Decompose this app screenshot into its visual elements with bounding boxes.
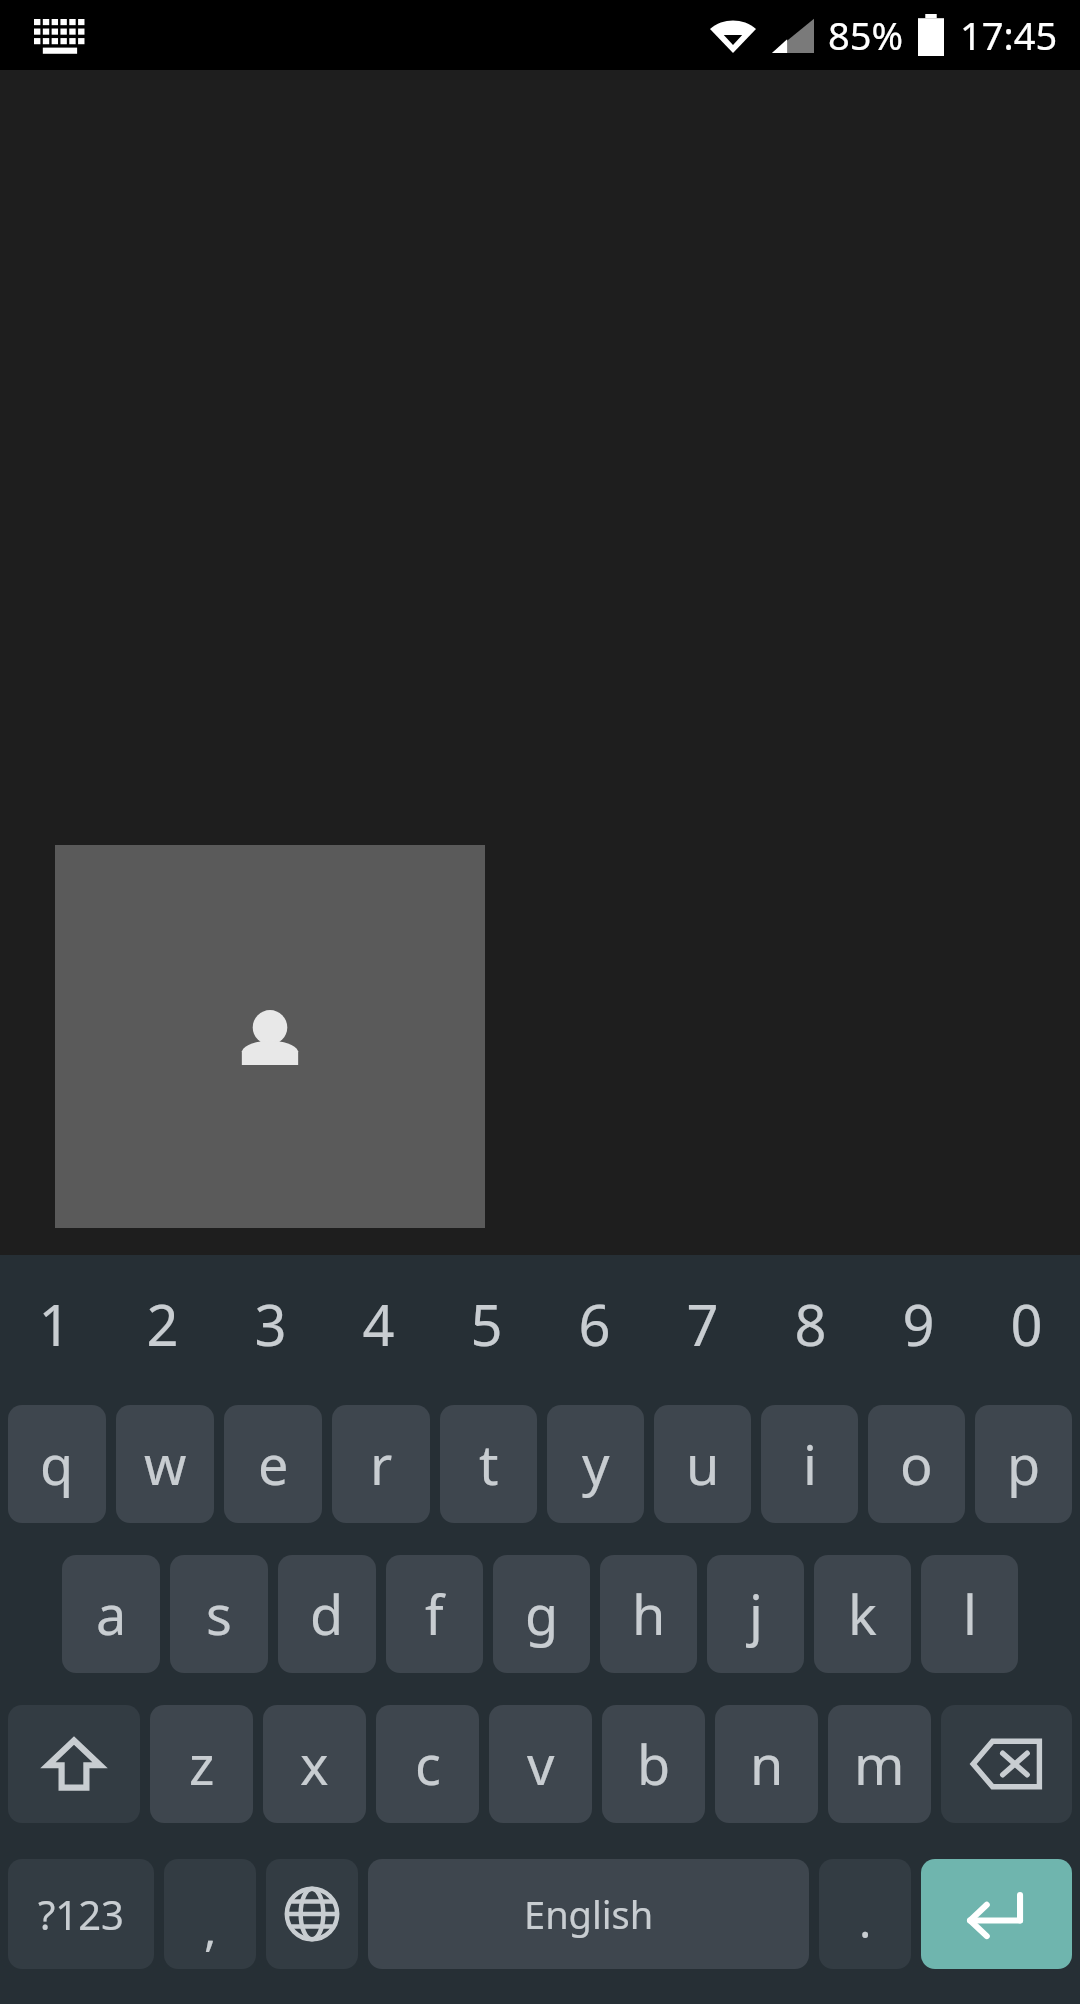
staticText: l — [963, 1577, 977, 1651]
button[interactable]: 7 — [648, 1255, 756, 1393]
staticText: g — [525, 1577, 559, 1651]
button[interactable]: Change language — [266, 1859, 358, 1969]
button[interactable]: . — [819, 1859, 911, 1969]
staticText: q — [40, 1427, 74, 1501]
button[interactable]: 8 — [756, 1255, 864, 1393]
staticText: x — [300, 1727, 329, 1801]
staticText: j — [749, 1577, 763, 1651]
staticText: v — [527, 1727, 555, 1801]
staticText: a — [96, 1577, 127, 1651]
staticText: c — [415, 1727, 441, 1801]
staticText: 85% — [828, 9, 904, 61]
button[interactable]: t — [440, 1405, 537, 1523]
staticText: f — [425, 1577, 444, 1651]
staticText: 6 — [578, 1286, 611, 1362]
staticText: 8 — [794, 1286, 827, 1362]
button[interactable]: v — [489, 1705, 592, 1823]
button[interactable]: Enter — [921, 1859, 1072, 1969]
button[interactable]: r — [332, 1405, 430, 1523]
staticText: b — [637, 1727, 671, 1801]
button[interactable]: s — [170, 1555, 268, 1673]
button[interactable]: i — [761, 1405, 858, 1523]
button[interactable]: , — [164, 1859, 256, 1969]
button[interactable]: b — [602, 1705, 705, 1823]
staticText: o — [900, 1427, 933, 1501]
staticText: p — [1007, 1427, 1041, 1501]
button[interactable]: Shift — [8, 1705, 140, 1823]
staticText: t — [479, 1427, 499, 1501]
button[interactable]: d — [278, 1555, 376, 1673]
button[interactable]: j — [707, 1555, 804, 1673]
staticText: e — [258, 1427, 289, 1501]
staticText: s — [206, 1577, 232, 1651]
staticText: 4 — [362, 1286, 395, 1362]
staticText: 1 — [38, 1286, 71, 1362]
button[interactable]: a — [62, 1555, 160, 1673]
staticText: 7 — [686, 1286, 719, 1362]
button[interactable]: ?123 — [8, 1859, 154, 1969]
staticText: d — [310, 1577, 344, 1651]
button[interactable]: u — [654, 1405, 751, 1523]
staticText: w — [144, 1427, 187, 1501]
button[interactable]: Backspace — [941, 1705, 1072, 1823]
button[interactable]: 5 — [432, 1255, 540, 1393]
button[interactable]: 9 — [864, 1255, 972, 1393]
staticText: z — [189, 1727, 215, 1801]
staticText: , — [204, 1897, 217, 1960]
button[interactable]: 4 — [324, 1255, 432, 1393]
button[interactable]: Image attachment — [55, 845, 485, 1228]
button[interactable]: n — [715, 1705, 818, 1823]
staticText: m — [854, 1727, 905, 1801]
button[interactable]: g — [493, 1555, 590, 1673]
button[interactable]: y — [547, 1405, 644, 1523]
button[interactable]: c — [376, 1705, 479, 1823]
staticText: 9 — [902, 1286, 935, 1362]
staticText: r — [370, 1427, 393, 1501]
staticText: 17:45 — [960, 9, 1058, 61]
button[interactable]: English — [368, 1859, 809, 1969]
staticText: y — [582, 1427, 610, 1501]
button[interactable]: w — [116, 1405, 214, 1523]
staticText: h — [632, 1577, 666, 1651]
button[interactable]: l — [921, 1555, 1018, 1673]
button[interactable]: q — [8, 1405, 106, 1523]
staticText: 2 — [146, 1286, 179, 1362]
staticText: k — [848, 1577, 877, 1651]
button[interactable]: h — [600, 1555, 697, 1673]
staticText: . — [859, 1889, 872, 1952]
button[interactable]: f — [386, 1555, 483, 1673]
button[interactable]: e — [224, 1405, 322, 1523]
staticText: 3 — [254, 1286, 287, 1362]
button[interactable]: 2 — [108, 1255, 216, 1393]
staticText: n — [750, 1727, 784, 1801]
staticText: ?123 — [38, 1887, 124, 1941]
button[interactable]: m — [828, 1705, 931, 1823]
button[interactable]: k — [814, 1555, 911, 1673]
staticText: 5 — [470, 1286, 503, 1362]
button[interactable]: p — [975, 1405, 1072, 1523]
other: Keyboard active — [34, 19, 80, 51]
button[interactable]: 6 — [540, 1255, 648, 1393]
button[interactable]: 0 — [972, 1255, 1080, 1393]
staticText: English — [524, 1888, 654, 1940]
staticText: 0 — [1010, 1286, 1043, 1362]
button[interactable]: 3 — [216, 1255, 324, 1393]
button[interactable]: x — [263, 1705, 366, 1823]
staticText: i — [803, 1427, 817, 1501]
button[interactable]: 1 — [0, 1255, 108, 1393]
button[interactable]: z — [150, 1705, 253, 1823]
staticText: u — [686, 1427, 720, 1501]
button[interactable]: o — [868, 1405, 965, 1523]
